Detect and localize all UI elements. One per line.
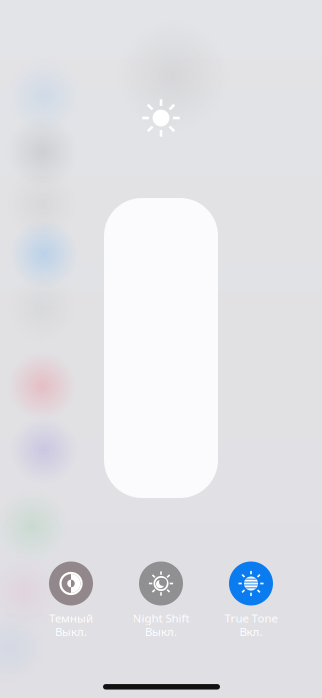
staticText: Night Shift — [132, 610, 189, 626]
button[interactable]: Темный — [26, 561, 116, 638]
button[interactable]: Night Shift — [116, 561, 206, 638]
staticText: True Tone — [224, 610, 277, 626]
staticText: Темный — [49, 610, 93, 626]
staticText: Выкл. — [55, 624, 87, 639]
button[interactable]: True Tone — [206, 561, 296, 638]
staticText: Выкл. — [145, 624, 177, 639]
button[interactable] — [104, 198, 218, 498]
staticText: Вкл. — [239, 624, 262, 639]
